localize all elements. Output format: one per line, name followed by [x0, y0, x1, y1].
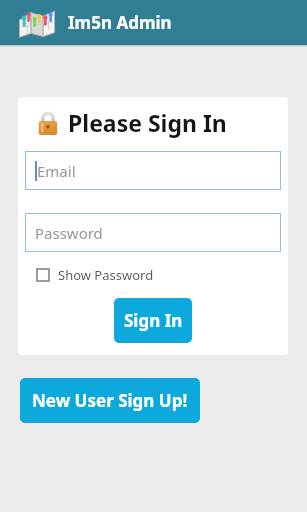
button[interactable]: Password: [25, 213, 281, 252]
staticText: Sign In: [124, 309, 183, 332]
staticText: Please Sign In: [68, 107, 227, 138]
other: App logo: [18, 6, 56, 40]
staticText: Im5n Admin: [68, 11, 172, 34]
staticText: New User Sign Up!: [32, 389, 188, 412]
staticText: Password: [35, 223, 103, 243]
button[interactable]: Show Password: [36, 266, 154, 284]
button[interactable]: New User Sign Up!: [20, 378, 200, 423]
button[interactable]: Email: [25, 151, 281, 190]
staticText: Show Password: [58, 266, 154, 284]
staticText: Email: [37, 161, 76, 181]
button[interactable]: Sign In: [114, 298, 192, 343]
